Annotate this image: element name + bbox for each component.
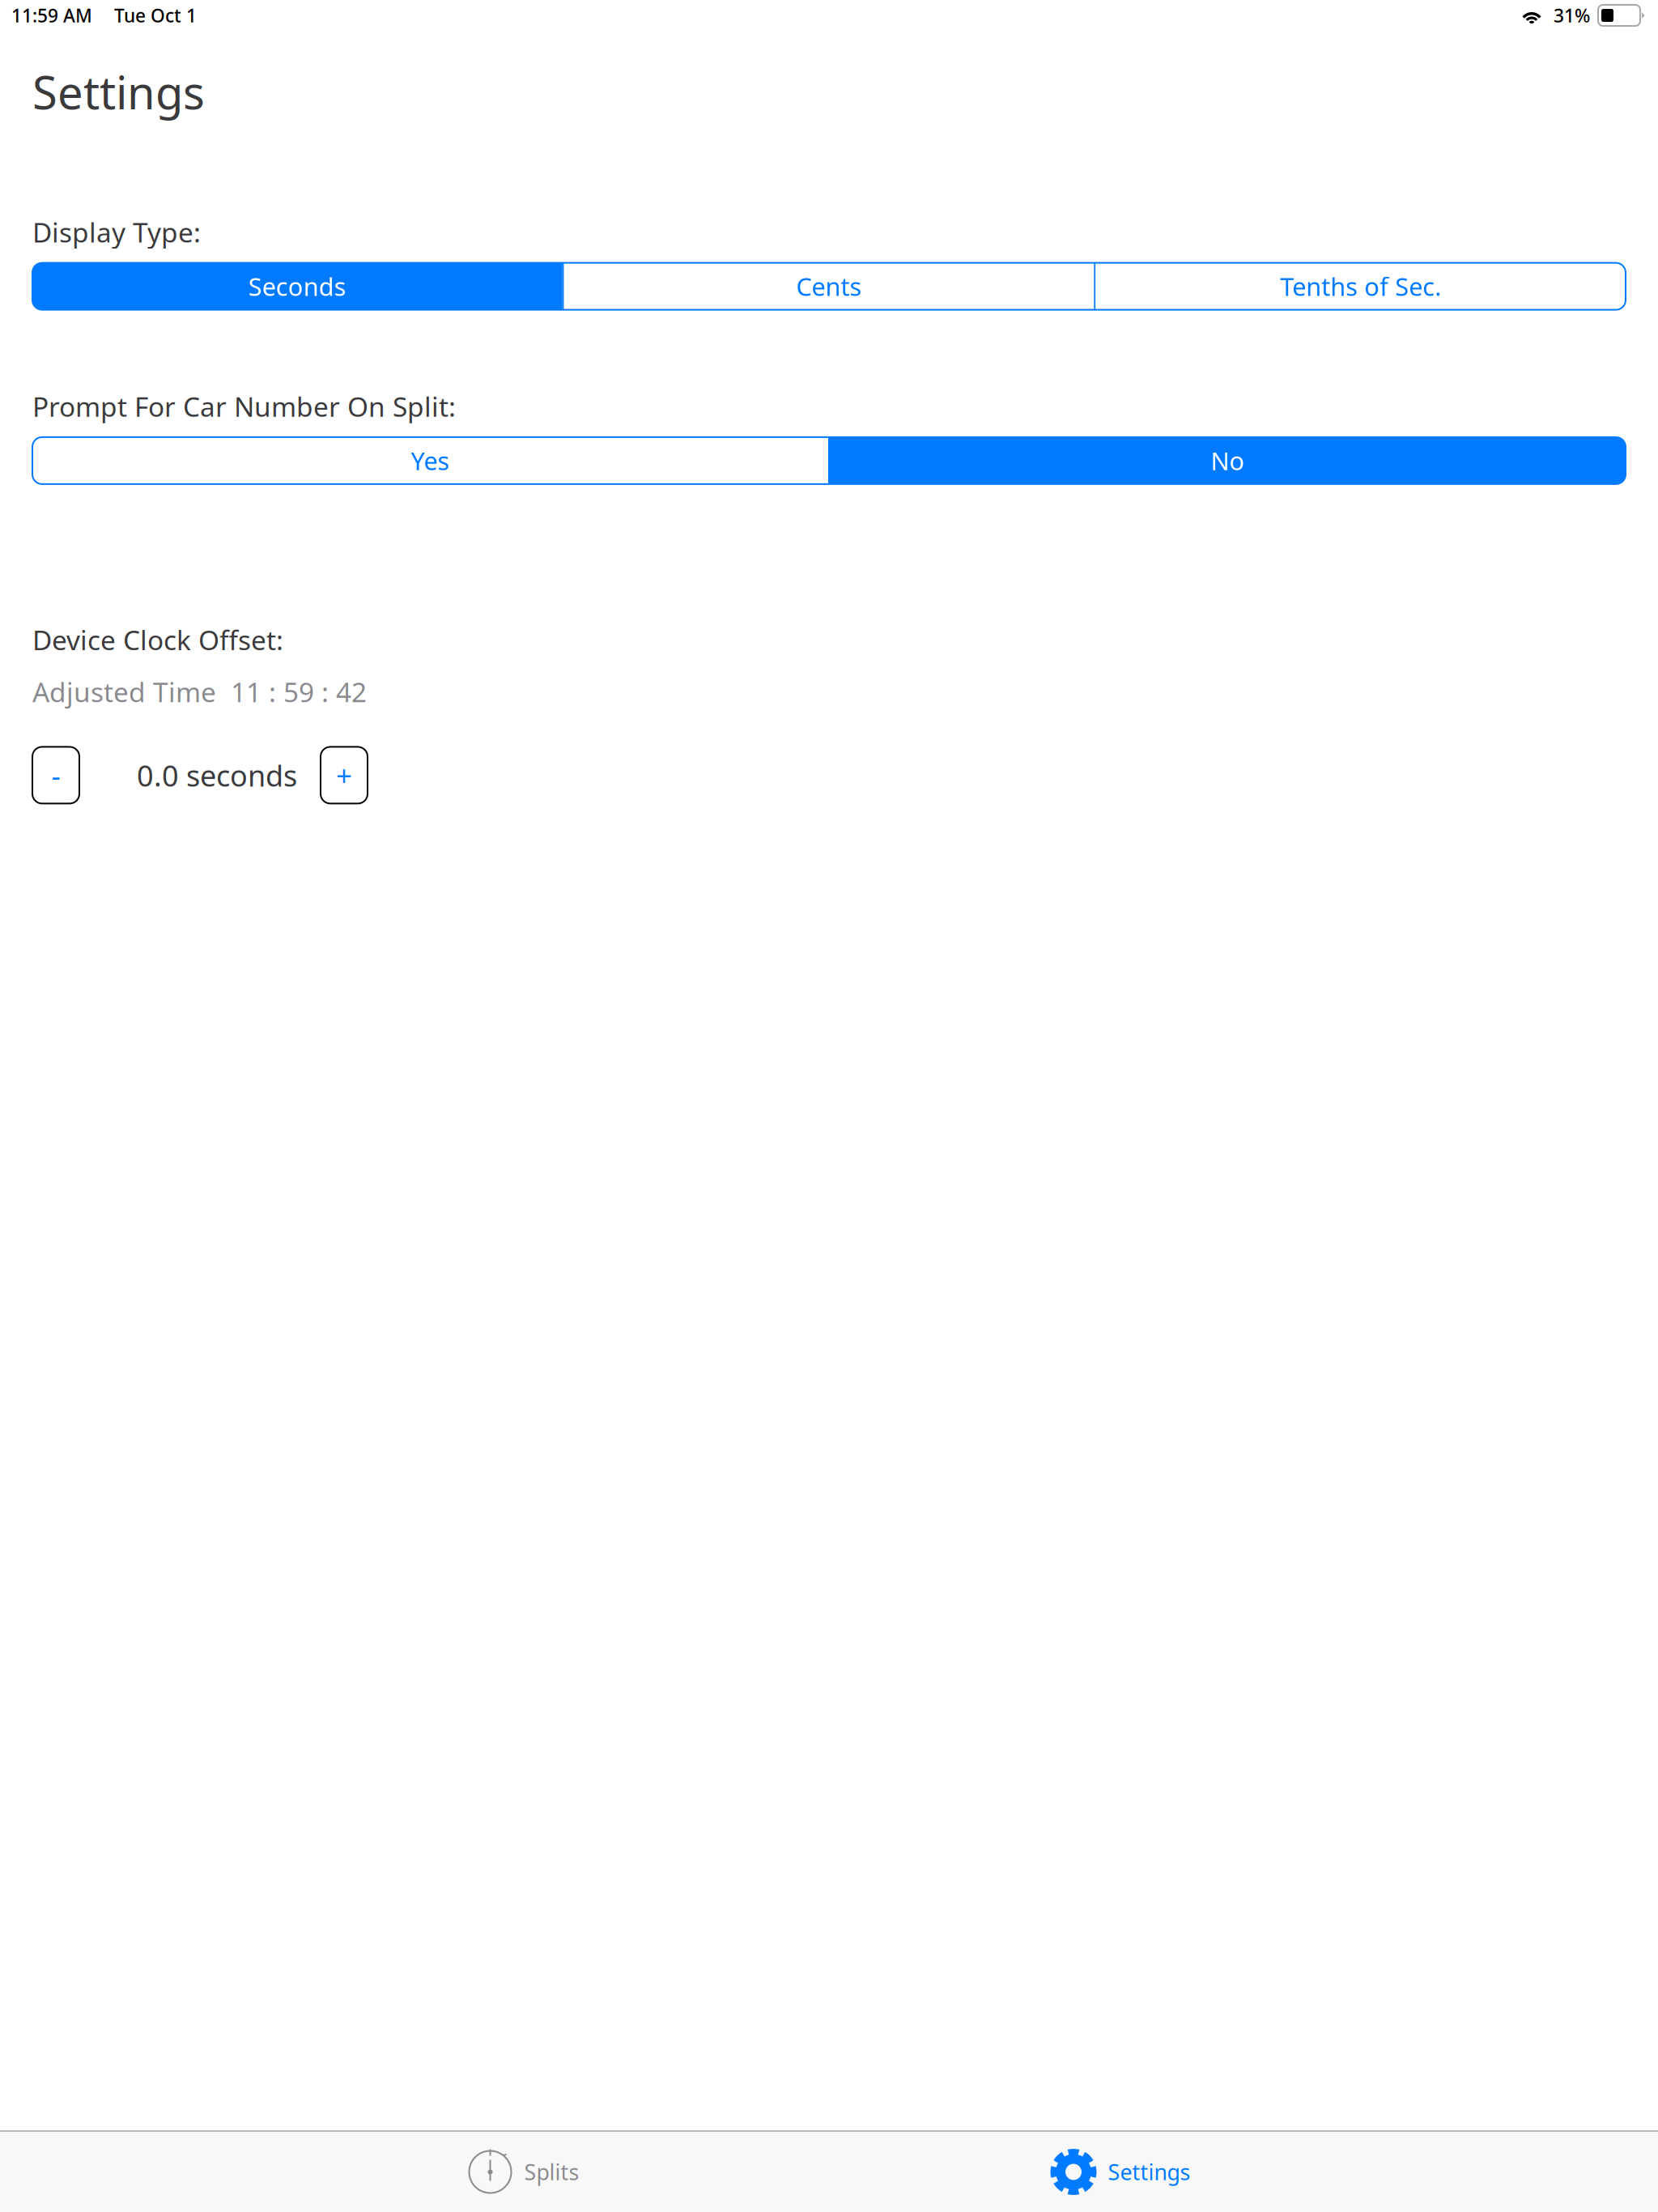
staticText: Tenths of Sec.: [1280, 270, 1441, 303]
button[interactable]: Yes: [32, 437, 828, 484]
staticText: Seconds: [248, 270, 346, 303]
staticText: 0.0 seconds: [137, 756, 297, 795]
staticText: Prompt For Car Number On Split:: [32, 388, 456, 424]
button[interactable]: Seconds: [32, 263, 562, 310]
button[interactable]: Splits: [468, 2132, 579, 2212]
staticText: Splits: [524, 2158, 579, 2186]
staticText: -: [51, 757, 60, 794]
button[interactable]: Decrease offset: [32, 747, 79, 804]
staticText: Adjusted Time 11 : 59 : 42: [32, 674, 367, 710]
staticText: Device Clock Offset:: [32, 622, 283, 658]
button[interactable]: Cents: [564, 263, 1094, 310]
staticText: 31%: [1554, 3, 1590, 28]
staticText: Settings: [32, 62, 205, 122]
staticText: Yes: [411, 444, 450, 477]
staticText: Settings: [1108, 2158, 1190, 2186]
button[interactable]: Tenths of Sec.: [1096, 263, 1626, 310]
button[interactable]: Settings: [1050, 2132, 1190, 2212]
staticText: Cents: [796, 270, 862, 303]
button[interactable]: Increase offset: [321, 747, 368, 804]
button[interactable]: No: [830, 437, 1626, 484]
staticText: 11:59 AM: [11, 3, 92, 28]
staticText: +: [336, 757, 352, 794]
staticText: Display Type:: [32, 214, 201, 250]
staticText: Tue Oct 1: [114, 3, 197, 28]
staticText: No: [1211, 444, 1245, 477]
